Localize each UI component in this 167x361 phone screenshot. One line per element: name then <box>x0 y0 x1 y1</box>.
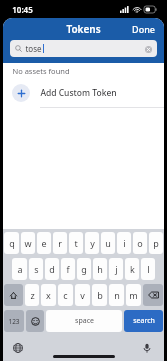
button[interactable]: s <box>29 258 43 280</box>
button[interactable]: search <box>124 310 163 332</box>
button[interactable]: Backspace <box>143 284 163 306</box>
button[interactable]: k <box>125 258 139 280</box>
button[interactable]: z <box>25 284 39 306</box>
button[interactable]: h <box>93 258 107 280</box>
staticText: y <box>90 237 95 249</box>
staticText: o <box>137 237 143 249</box>
button[interactable]: n <box>109 284 124 306</box>
staticText: d <box>49 263 55 275</box>
staticText: v <box>80 289 85 301</box>
button[interactable]: q <box>4 232 19 254</box>
button[interactable]: Done <box>123 20 164 38</box>
staticText: 10:45 <box>12 4 33 15</box>
staticText: l <box>147 263 150 275</box>
button[interactable]: j <box>109 258 123 280</box>
staticText: Add Custom Token <box>40 87 117 99</box>
button[interactable]: 123 <box>4 310 24 332</box>
button[interactable]: i <box>117 232 131 254</box>
staticText: 123 <box>8 317 20 326</box>
button[interactable]: u <box>101 232 115 254</box>
staticText: space <box>75 316 94 326</box>
staticText: b <box>97 289 103 301</box>
staticText: r <box>58 237 62 249</box>
staticText: x <box>46 289 51 301</box>
staticText: u <box>105 237 111 249</box>
button[interactable]: o <box>133 232 147 254</box>
staticText: p <box>153 237 159 249</box>
button[interactable]: a <box>12 258 27 280</box>
button[interactable]: w <box>21 232 35 254</box>
staticText: w <box>24 237 32 249</box>
button[interactable]: y <box>85 232 99 254</box>
staticText: a <box>17 263 23 275</box>
button[interactable]: l <box>141 258 155 280</box>
button[interactable]: b <box>92 284 107 306</box>
staticText: s <box>34 263 39 275</box>
button[interactable]: Shift <box>4 284 23 306</box>
button[interactable]: t <box>69 232 83 254</box>
staticText: search <box>133 316 155 326</box>
button[interactable]: Dictation <box>138 339 156 357</box>
staticText: Done <box>132 23 155 35</box>
button[interactable]: r <box>53 232 67 254</box>
button[interactable]: c <box>58 284 73 306</box>
button[interactable]: g <box>77 258 91 280</box>
staticText: z <box>30 289 35 301</box>
staticText: h <box>97 263 103 275</box>
staticText: No assets found <box>12 66 70 76</box>
button[interactable]: x <box>41 284 56 306</box>
staticText: i <box>123 237 126 249</box>
button[interactable]: space <box>46 310 122 332</box>
button[interactable]: Emoji <box>26 310 44 332</box>
staticText: g <box>81 263 87 275</box>
staticText: j <box>115 263 118 275</box>
button[interactable]: tose <box>10 40 157 57</box>
staticText: q <box>9 237 15 249</box>
staticText: tose <box>25 43 42 54</box>
staticText: m <box>129 289 138 301</box>
staticText: n <box>114 289 120 301</box>
staticText: e <box>41 237 47 249</box>
staticText: k <box>130 263 135 275</box>
button[interactable]: p <box>149 232 163 254</box>
button[interactable]: v <box>75 284 90 306</box>
button[interactable]: Clear search <box>144 45 152 53</box>
staticText: c <box>63 289 68 301</box>
staticText: t <box>74 237 78 249</box>
staticText: Tokens <box>66 22 101 36</box>
button[interactable]: m <box>126 284 141 306</box>
button[interactable]: d <box>45 258 59 280</box>
staticText: f <box>66 263 70 275</box>
button[interactable]: Add Custom Token <box>3 79 164 107</box>
button[interactable]: e <box>37 232 51 254</box>
button[interactable]: Change keyboard <box>9 339 27 357</box>
button[interactable]: f <box>61 258 75 280</box>
